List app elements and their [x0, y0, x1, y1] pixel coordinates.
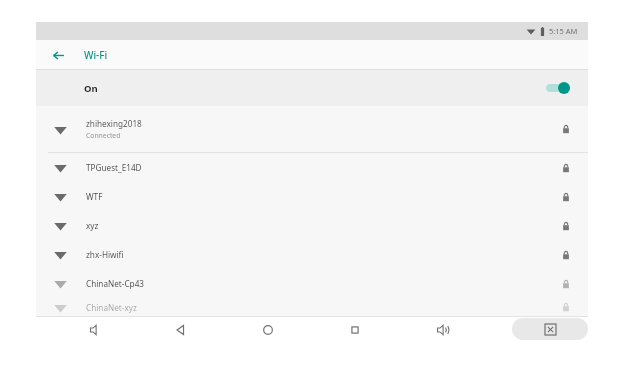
button[interactable]: TPGuest_E14D	[36, 153, 588, 182]
button[interactable]: Back	[164, 318, 198, 342]
button[interactable]: zhihexing2018	[36, 106, 588, 152]
button[interactable]: Volume up	[425, 318, 459, 342]
staticText: 5:15 AM	[549, 26, 578, 36]
button[interactable]: Home	[251, 318, 285, 342]
button[interactable]: On	[36, 70, 588, 106]
button[interactable]: Screenshot	[512, 318, 588, 340]
button[interactable]: zhx-Hiwifi	[36, 240, 588, 269]
staticText: TPGuest_E14D	[86, 162, 142, 173]
button[interactable]: xyz	[36, 211, 588, 240]
button[interactable]: Recents	[338, 318, 372, 342]
staticText: Connected	[86, 131, 121, 140]
staticText: xyz	[86, 220, 99, 231]
staticText: ChinaNet-Cp43	[86, 278, 145, 289]
button[interactable]: WTF	[36, 182, 588, 211]
staticText: WTF	[86, 191, 103, 202]
button[interactable]: Volume down	[78, 318, 112, 342]
staticText: On	[84, 82, 98, 95]
staticText: zhx-Hiwifi	[86, 249, 124, 260]
staticText: Wi-Fi	[84, 48, 108, 62]
button[interactable]: ChinaNet-xyz	[36, 298, 588, 316]
button[interactable]: Back	[46, 43, 70, 67]
staticText: ChinaNet-xyz	[86, 302, 137, 313]
staticText: zhihexing2018	[86, 118, 142, 129]
button[interactable]: ChinaNet-Cp43	[36, 269, 588, 298]
